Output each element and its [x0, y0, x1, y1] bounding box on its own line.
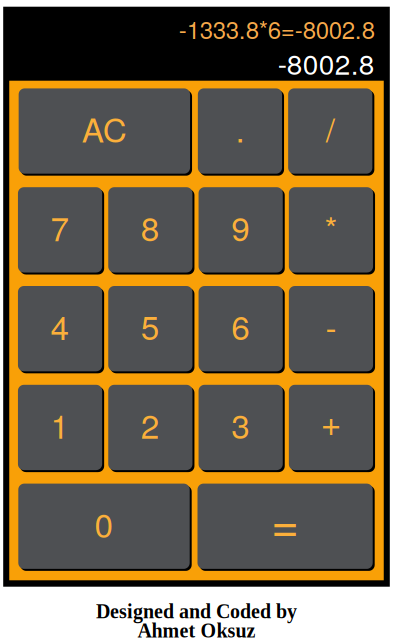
button[interactable]: 6	[198, 286, 283, 371]
staticText: -	[325, 302, 336, 349]
staticText: -1333.8*6=-8002.8	[179, 11, 375, 46]
button[interactable]: 7	[18, 187, 102, 272]
button[interactable]: AC	[19, 88, 190, 174]
staticText: +	[320, 395, 341, 446]
button[interactable]: 9	[198, 187, 283, 272]
button[interactable]: 2	[108, 385, 192, 470]
button[interactable]: 1	[18, 385, 102, 470]
staticText: 7	[50, 203, 69, 251]
staticText: /	[326, 104, 335, 152]
staticText: *	[324, 203, 337, 251]
staticText: 6	[231, 302, 250, 349]
button[interactable]: 8	[108, 187, 192, 272]
button[interactable]: +	[289, 385, 373, 470]
button[interactable]: 4	[18, 286, 102, 371]
staticText: 1	[50, 401, 69, 448]
button[interactable]: /	[288, 88, 372, 174]
staticText: 2	[141, 401, 160, 448]
staticText: 5	[141, 302, 160, 349]
button[interactable]: *	[289, 187, 373, 272]
button[interactable]: =	[197, 484, 373, 569]
staticText: 8	[141, 203, 160, 251]
staticText: Ahmet Oksuz	[137, 620, 255, 641]
staticText: 9	[231, 203, 250, 251]
staticText: 3	[231, 401, 250, 448]
staticText: .	[235, 104, 244, 152]
staticText: 4	[50, 302, 69, 349]
button[interactable]: 5	[108, 286, 192, 371]
staticText: =	[271, 487, 299, 556]
button[interactable]: .	[198, 88, 282, 174]
staticText: Designed and Coded by	[96, 600, 297, 622]
button[interactable]: 0	[18, 484, 190, 569]
staticText: AC	[82, 104, 127, 152]
button[interactable]: 3	[198, 385, 283, 470]
staticText: 0	[94, 499, 113, 547]
button[interactable]: -	[289, 286, 373, 371]
staticText: -8002.8	[278, 43, 375, 83]
